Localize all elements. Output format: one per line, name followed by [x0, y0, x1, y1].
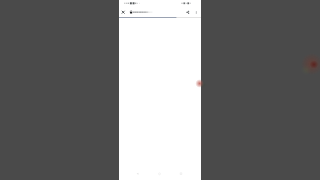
- button[interactable]: Close: [119, 9, 127, 16]
- button[interactable]: More options: [194, 9, 201, 16]
- button[interactable]: Share: [187, 9, 194, 16]
- button[interactable]: Page info, secure site URL: [127, 9, 187, 16]
